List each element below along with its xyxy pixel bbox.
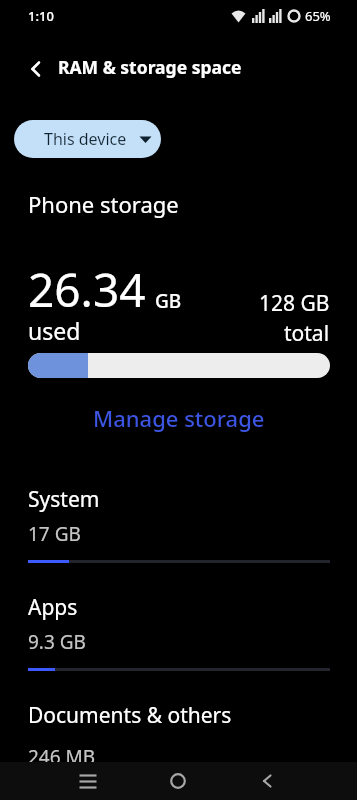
button[interactable] — [0, 593, 357, 677]
button[interactable] — [18, 51, 54, 87]
button[interactable] — [69, 762, 107, 800]
button[interactable] — [0, 701, 357, 785]
staticText: RAM & storage space — [58, 55, 242, 79]
staticText: used — [28, 315, 81, 346]
button[interactable]: Manage storage — [83, 396, 275, 440]
button[interactable] — [0, 485, 357, 569]
staticText: total — [284, 319, 330, 348]
staticText: This device — [44, 128, 127, 150]
staticText: 17 GB — [28, 521, 81, 547]
staticText: Documents & others — [28, 701, 232, 730]
staticText: 65% — [305, 7, 331, 25]
staticText: GB — [155, 288, 182, 314]
button[interactable]: This device — [14, 120, 161, 158]
staticText: 9.3 GB — [28, 629, 86, 655]
staticText: Manage storage — [93, 403, 265, 433]
staticText: System — [28, 485, 100, 514]
button[interactable] — [248, 762, 286, 800]
staticText: 1:10 — [28, 7, 54, 25]
staticText: Phone storage — [28, 189, 179, 219]
staticText: Apps — [28, 593, 78, 622]
button[interactable] — [159, 762, 197, 800]
staticText: 246 MB — [28, 744, 96, 770]
staticText: 26.34 — [28, 258, 146, 321]
staticText: 128 GB — [259, 289, 330, 318]
